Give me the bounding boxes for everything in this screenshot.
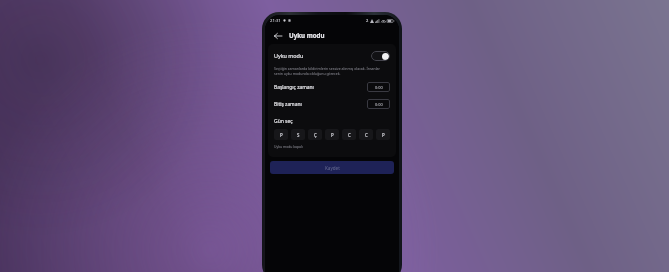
button[interactable]: Ç	[308, 129, 322, 140]
button[interactable]: P	[325, 129, 339, 140]
button[interactable]: C	[359, 129, 373, 140]
staticText: Uyku modu kapalı	[274, 144, 303, 149]
staticText: Gün seç	[274, 118, 293, 125]
staticText: Başlangıç zamanı	[274, 84, 314, 91]
button[interactable]: Bitiş zamanı	[274, 99, 390, 109]
button[interactable]: Back	[271, 29, 284, 42]
staticText: Uyku modu	[274, 52, 304, 59]
staticText: Bitiş zamanı	[274, 101, 302, 108]
staticText: P	[280, 132, 283, 138]
staticText: P	[382, 132, 385, 138]
staticText: Seçtiğin zamanlarda bildirimlerin sessiz…	[274, 66, 381, 76]
staticText: C	[365, 132, 368, 138]
staticText: Ç	[314, 132, 317, 138]
button[interactable]: Kaydet	[270, 161, 394, 174]
staticText: 0:00	[375, 85, 383, 90]
staticText: S	[297, 132, 300, 138]
staticText: 2	[366, 18, 369, 23]
button[interactable]: Uyku modu toggle	[371, 51, 390, 61]
button[interactable]: S	[291, 129, 305, 140]
staticText: Kaydet	[325, 165, 340, 171]
staticText: 21:31	[270, 18, 281, 24]
button[interactable]: Uyku modu	[274, 49, 390, 62]
staticText: 0:00	[375, 102, 383, 107]
button[interactable]: C	[342, 129, 356, 140]
button[interactable]: Başlangıç zamanı	[274, 82, 390, 92]
staticText: P	[331, 132, 334, 138]
button[interactable]: P	[376, 129, 390, 140]
button[interactable]: P	[274, 129, 288, 140]
staticText: C	[348, 132, 351, 138]
staticText: Uyku modu	[289, 31, 325, 39]
